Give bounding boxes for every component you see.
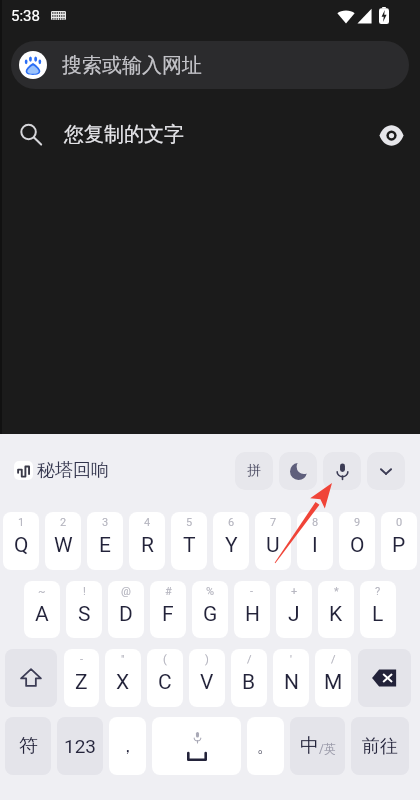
button[interactable]: Pinyin — [235, 452, 273, 490]
staticText: 123 — [64, 735, 97, 757]
staticText: M — [324, 670, 343, 695]
button[interactable]: 3 — [87, 512, 123, 570]
staticText: 2 — [60, 516, 67, 529]
staticText: S — [78, 602, 91, 627]
button[interactable]: ' — [273, 649, 309, 707]
staticText: ， — [119, 736, 136, 757]
staticText: B — [242, 670, 256, 695]
staticText: 0 — [396, 516, 403, 529]
button[interactable]: - — [64, 649, 99, 707]
button[interactable]: - — [234, 581, 270, 638]
button[interactable]: Backspace — [358, 649, 411, 707]
button[interactable]: # — [150, 581, 186, 638]
staticText: J — [288, 602, 300, 627]
staticText: " — [121, 653, 125, 666]
button[interactable]: / — [315, 649, 351, 707]
button[interactable]: 您复制的文字 — [21, 89, 404, 180]
staticText: 4 — [144, 516, 151, 529]
button[interactable]: 。 — [247, 717, 284, 775]
button[interactable]: ~ — [24, 581, 60, 638]
staticText: V — [200, 670, 214, 695]
staticText: P — [392, 533, 406, 558]
button[interactable]: Night mode — [279, 452, 317, 490]
button[interactable]: @ — [108, 581, 144, 638]
staticText: Z — [75, 670, 88, 695]
staticText: ) — [205, 653, 209, 666]
staticText: T — [183, 533, 196, 558]
staticText: / — [331, 653, 336, 666]
staticText: A — [35, 602, 49, 627]
staticText: 您复制的文字 — [64, 122, 184, 147]
staticText: O — [350, 533, 365, 558]
staticText: 6 — [228, 516, 235, 529]
staticText: 搜索或输入网址 — [62, 53, 202, 78]
staticText: W — [54, 533, 73, 558]
staticText: 1 — [18, 516, 25, 529]
staticText: D — [119, 602, 133, 627]
staticText: # — [165, 585, 172, 598]
staticText: ~ — [38, 585, 46, 598]
button[interactable]: 5 — [171, 512, 207, 570]
button[interactable]: % — [192, 581, 228, 638]
staticText: 前往 — [362, 735, 398, 758]
button[interactable]: ( — [147, 649, 183, 707]
button[interactable]: 1 — [3, 512, 39, 570]
button[interactable]: 123 — [57, 717, 103, 775]
button[interactable]: " — [105, 649, 141, 707]
staticText: - — [80, 653, 84, 666]
staticText: * — [334, 585, 339, 598]
staticText: E — [99, 533, 111, 558]
button[interactable]: 中 — [290, 717, 345, 775]
staticText: / — [247, 653, 252, 666]
button[interactable]: 2 — [45, 512, 81, 570]
staticText: 7 — [270, 516, 277, 529]
button[interactable]: * — [318, 581, 354, 638]
staticText: N — [284, 670, 299, 695]
button[interactable]: 4 — [129, 512, 165, 570]
staticText: 3 — [102, 516, 109, 529]
button[interactable]: 6 — [213, 512, 249, 570]
staticText: + — [291, 585, 298, 598]
button[interactable]: Space — [152, 717, 241, 775]
button[interactable]: 符 — [5, 717, 51, 775]
button[interactable]: Voice input — [323, 452, 361, 490]
staticText: - — [250, 585, 254, 598]
button[interactable]: Collapse keyboard — [367, 452, 405, 490]
button[interactable]: 0 — [381, 512, 417, 570]
button[interactable]: / — [231, 649, 267, 707]
staticText: C — [158, 670, 172, 695]
staticText: 5:38 — [11, 7, 40, 25]
staticText: G — [203, 602, 218, 627]
button[interactable]: 8 — [297, 512, 333, 570]
staticText: 9 — [354, 516, 361, 529]
staticText: 8 — [312, 516, 319, 529]
staticText: % — [206, 585, 215, 598]
staticText: U — [266, 533, 280, 558]
button[interactable]: Show text — [378, 122, 404, 148]
button[interactable]: 7 — [255, 512, 291, 570]
button[interactable]: ， — [109, 717, 146, 775]
button[interactable]: ? — [360, 581, 396, 638]
button[interactable]: 前往 — [351, 717, 409, 775]
staticText: @ — [121, 585, 131, 598]
staticText: Y — [225, 533, 238, 558]
staticText: R — [141, 533, 154, 558]
staticText: 符 — [19, 734, 38, 758]
button[interactable]: 9 — [339, 512, 375, 570]
button[interactable]: 搜索或输入网址 — [11, 41, 409, 89]
staticText: K — [329, 602, 343, 627]
staticText: 秘塔回响 — [37, 459, 109, 482]
staticText: 拼 — [247, 462, 261, 480]
staticText: ' — [290, 653, 292, 666]
button[interactable]: ) — [189, 649, 225, 707]
staticText: F — [162, 602, 174, 627]
staticText: ? — [375, 585, 381, 598]
button[interactable]: Shift — [5, 649, 57, 707]
staticText: 5 — [186, 516, 193, 529]
staticText: 中 — [300, 734, 319, 758]
staticText: 。 — [257, 736, 274, 757]
staticText: ( — [163, 653, 167, 666]
staticText: I — [312, 533, 318, 558]
button[interactable]: + — [276, 581, 312, 638]
button[interactable]: ! — [66, 581, 102, 638]
